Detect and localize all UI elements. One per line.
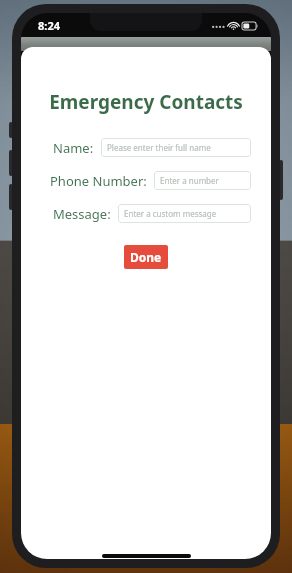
staticText: Please enter their full name — [107, 142, 211, 153]
staticText: Done — [130, 249, 162, 265]
staticText: Enter a custom message — [124, 208, 217, 219]
button[interactable]: Message: — [118, 204, 251, 223]
staticText: Name: — [53, 139, 94, 157]
button[interactable]: Name: — [101, 138, 251, 157]
staticText: Enter a number — [160, 175, 219, 186]
staticText: Emergency Contacts — [21, 89, 271, 115]
staticText: 8:24 — [38, 18, 60, 33]
staticText: Message: — [53, 205, 111, 223]
button[interactable]: Done — [124, 245, 168, 269]
staticText: Phone Number: — [50, 172, 147, 190]
button[interactable]: Phone Number: — [154, 171, 251, 190]
